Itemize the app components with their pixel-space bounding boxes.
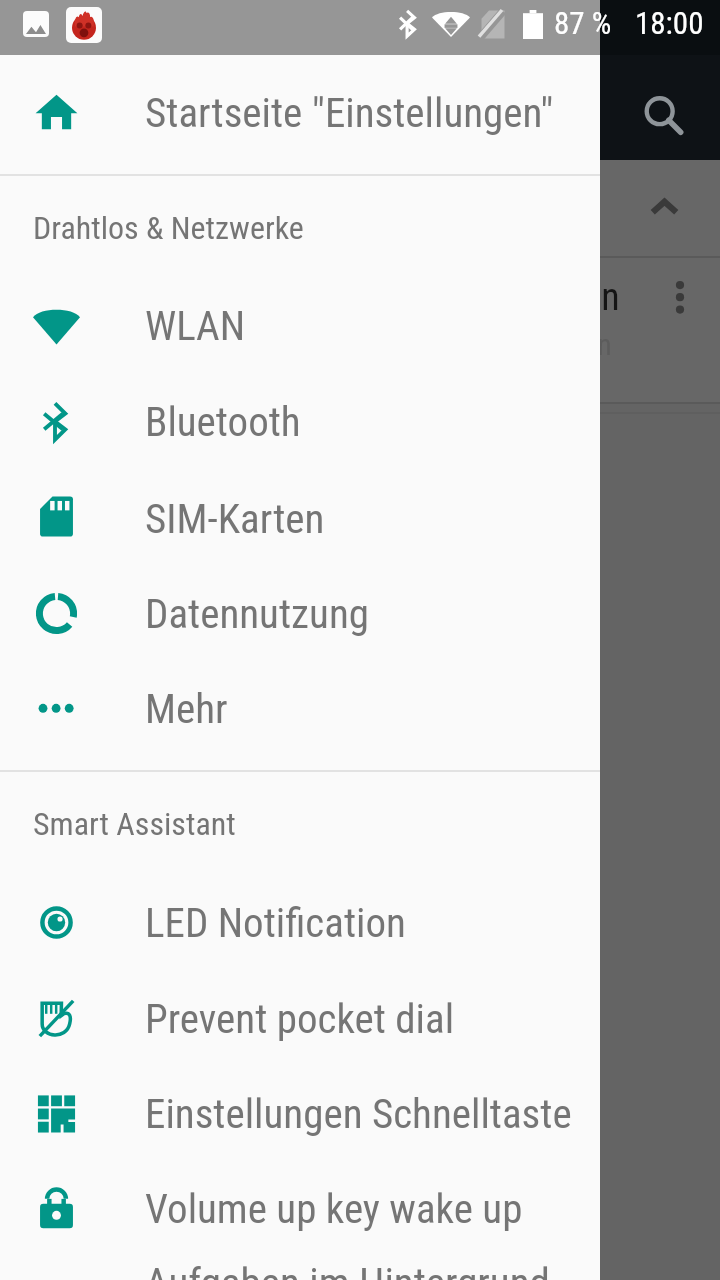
button[interactable]: Volume up key wake up — [0, 1161, 600, 1256]
button[interactable]: SIM-Karten — [0, 471, 600, 566]
button[interactable]: Aufgaben im Hintergrund — [0, 1235, 600, 1280]
staticText: 87 % — [554, 5, 612, 41]
staticText: LED Notification — [145, 899, 406, 947]
staticText: Einstellungen Schnelltaste — [145, 1090, 572, 1138]
staticText: Prevent pocket dial — [145, 995, 455, 1043]
staticText: Aufgaben im Hintergrund — [145, 1259, 550, 1280]
staticText: Bluetooth — [145, 398, 301, 446]
button[interactable]: Bluetooth — [0, 374, 600, 469]
button[interactable]: LED Notification — [0, 875, 600, 970]
button[interactable]: Prevent pocket dial — [0, 971, 600, 1066]
staticText: Benachrichtigungen — [322, 275, 620, 320]
staticText: Mehr — [145, 685, 228, 733]
staticText: Datennutzung — [145, 590, 369, 638]
staticText: Alle zulassen — [455, 327, 612, 362]
staticText: Startseite "Einstellungen" — [145, 89, 554, 137]
staticText: 18:00 — [635, 5, 704, 41]
button[interactable]: Datennutzung — [0, 566, 600, 661]
button[interactable]: WLAN — [0, 278, 600, 373]
staticText: WLAN — [145, 302, 246, 350]
button[interactable]: Startseite "Einstellungen" — [0, 55, 600, 175]
staticText: Smart Assistant — [33, 805, 236, 843]
button[interactable]: Search — [626, 78, 702, 154]
button[interactable]: Mehr — [0, 661, 600, 756]
staticText: Drahtlos & Netzwerke — [33, 209, 304, 247]
button[interactable]: Einstellungen Schnelltaste — [0, 1066, 600, 1161]
staticText: Volume up key wake up — [145, 1185, 523, 1233]
staticText: SIM-Karten — [145, 495, 325, 543]
